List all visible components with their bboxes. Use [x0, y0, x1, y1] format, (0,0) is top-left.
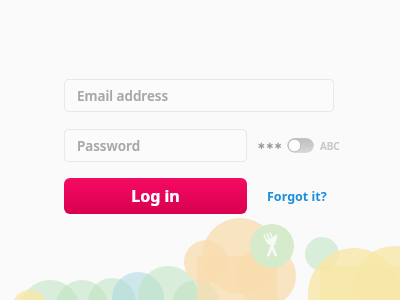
button[interactable]: Show password: [287, 138, 314, 153]
other: Restaurant: [250, 224, 294, 268]
staticText: Password: [77, 137, 141, 155]
button[interactable]: Email address: [64, 79, 334, 112]
staticText: ∗∗∗: [257, 140, 283, 152]
button[interactable]: Log in: [64, 178, 247, 214]
staticText: Email address: [77, 87, 169, 105]
staticText: Forgot it?: [267, 188, 327, 205]
button[interactable]: Forgot it?: [265, 186, 329, 207]
staticText: ABC: [320, 139, 340, 153]
button[interactable]: Password: [64, 129, 247, 162]
staticText: Log in: [131, 185, 180, 207]
